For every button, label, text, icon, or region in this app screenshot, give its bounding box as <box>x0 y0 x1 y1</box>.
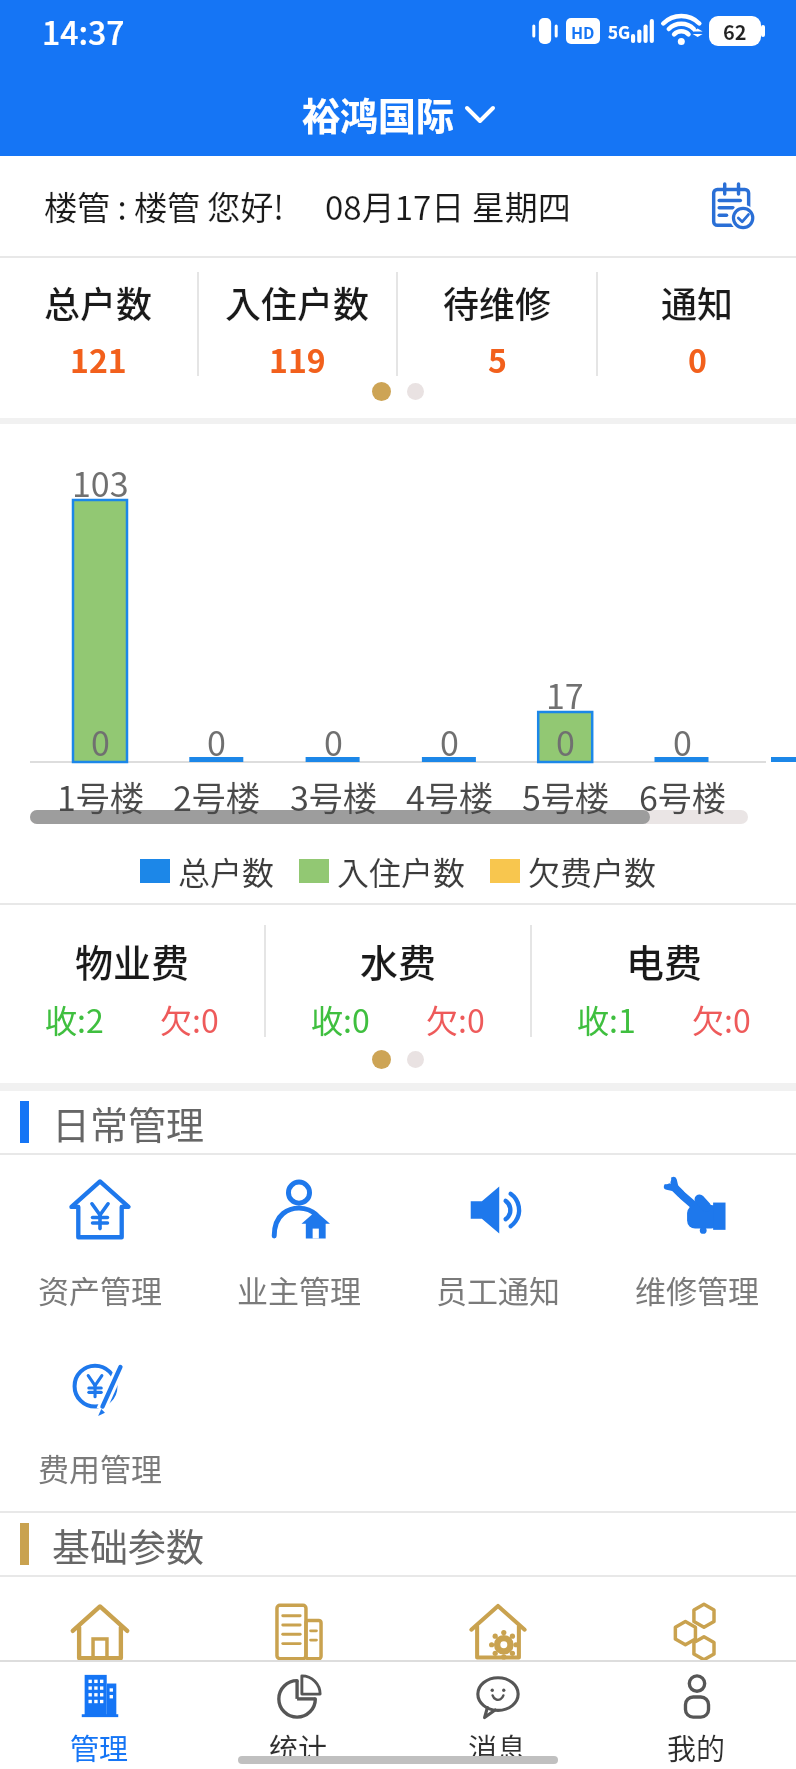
button[interactable]: 业主管理 <box>199 1155 398 1333</box>
staticText: 裕鸿国际 <box>302 86 455 141</box>
staticText: 121 <box>70 336 127 382</box>
staticText: 我的 <box>667 1726 726 1768</box>
staticText: 欠:0 <box>426 996 485 1042</box>
staticText: 维修管理 <box>635 1267 759 1312</box>
staticText: 4号楼 <box>406 772 493 821</box>
button[interactable]: 通知 <box>598 258 796 388</box>
staticText: HD <box>571 20 595 43</box>
button[interactable]: 待维修 <box>398 258 596 388</box>
staticText: 电费 <box>626 933 703 988</box>
staticText: 0 <box>91 717 110 766</box>
button[interactable] <box>199 1577 398 1651</box>
staticText: 水费 <box>360 933 437 988</box>
staticText: 0 <box>556 717 575 766</box>
staticText: 5号楼 <box>522 772 609 821</box>
button[interactable] <box>710 183 756 229</box>
button[interactable]: 总户数 <box>0 258 197 388</box>
staticText: 收:0 <box>311 996 370 1042</box>
staticText: 基础参数 <box>52 1517 205 1572</box>
staticText: 欠:0 <box>160 996 219 1042</box>
button[interactable]: 管理 <box>0 1662 199 1769</box>
staticText: 14:37 <box>42 8 125 54</box>
staticText: 08月17日 星期四 <box>325 182 571 230</box>
staticText: 17 <box>546 670 584 719</box>
button[interactable]: 消息 <box>398 1662 597 1769</box>
staticText: 收:2 <box>45 996 104 1042</box>
staticText: 0 <box>324 717 343 766</box>
button[interactable]: 入住户数 <box>199 258 396 388</box>
staticText: 消息 <box>468 1726 527 1768</box>
button[interactable]: 员工通知 <box>398 1155 597 1333</box>
button[interactable]: 维修管理 <box>597 1155 796 1333</box>
button[interactable]: 费用管理 <box>0 1333 199 1511</box>
staticText: 欠:0 <box>692 996 751 1042</box>
staticText: 待维修 <box>443 276 552 328</box>
staticText: 楼管 : 楼管 您好! <box>44 182 285 230</box>
staticText: 103 <box>72 458 129 507</box>
button[interactable]: 统计 <box>199 1662 398 1769</box>
button[interactable]: 裕鸿国际 <box>302 86 495 141</box>
button[interactable]: 资产管理 <box>0 1155 199 1333</box>
staticText: 0 <box>673 717 692 766</box>
staticText: 通知 <box>661 276 734 328</box>
staticText: 3号楼 <box>290 772 377 821</box>
staticText: 5 <box>488 336 507 382</box>
staticText: 总户数 <box>44 276 153 328</box>
staticText: 0 <box>688 336 707 382</box>
staticText: 119 <box>269 336 326 382</box>
staticText: 欠费户数 <box>528 848 657 894</box>
staticText: 员工通知 <box>436 1267 560 1312</box>
staticText: 6号楼 <box>639 772 726 821</box>
staticText: 1号楼 <box>57 772 144 821</box>
staticText: 物业费 <box>75 933 190 988</box>
staticText: 0 <box>207 717 226 766</box>
staticText: 入住户数 <box>337 848 466 894</box>
staticText: 统计 <box>269 1726 328 1768</box>
button[interactable] <box>0 1577 199 1651</box>
staticText: 62 <box>723 17 747 46</box>
button[interactable]: 电费 <box>532 905 796 1055</box>
button[interactable] <box>597 1577 796 1651</box>
staticText: 收:1 <box>577 996 636 1042</box>
button[interactable]: 物业费 <box>0 905 264 1055</box>
staticText: 管理 <box>70 1726 129 1768</box>
staticText: 入住户数 <box>225 276 370 328</box>
staticText: 5G <box>608 19 631 44</box>
staticText: 日常管理 <box>52 1095 205 1150</box>
button[interactable]: 我的 <box>597 1662 796 1769</box>
button[interactable] <box>398 1577 597 1651</box>
staticText: 业主管理 <box>237 1267 361 1312</box>
staticText: 费用管理 <box>38 1445 162 1490</box>
staticText: 2号楼 <box>173 772 260 821</box>
button[interactable]: 水费 <box>266 905 530 1055</box>
staticText: 资产管理 <box>38 1267 162 1312</box>
staticText: 总户数 <box>178 848 275 894</box>
staticText: 0 <box>440 717 459 766</box>
